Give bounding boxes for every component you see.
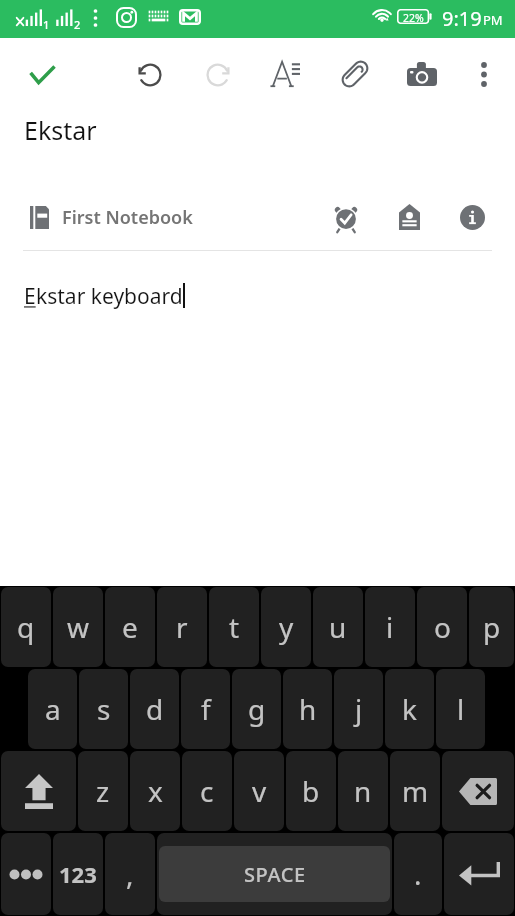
button[interactable]: g [232, 669, 281, 749]
button[interactable]: n [338, 751, 388, 831]
button[interactable]: Note info [450, 195, 494, 239]
staticText: Ekstar [24, 113, 97, 147]
staticText: E [24, 282, 36, 311]
staticText: x [148, 772, 163, 810]
staticText: 22% [403, 11, 424, 25]
staticText: SPACE [244, 861, 306, 888]
staticText: 2 [74, 17, 81, 32]
staticText: PM [483, 11, 503, 29]
staticText: s [97, 690, 111, 728]
staticText: b [302, 772, 320, 810]
button[interactable]: Reminder [324, 195, 368, 239]
staticText: h [299, 690, 317, 728]
button[interactable]: v [234, 751, 284, 831]
staticText: t [229, 608, 240, 646]
button[interactable]: j [334, 669, 383, 749]
button[interactable]: f [181, 669, 230, 749]
staticText: w [67, 608, 90, 646]
staticText: j [355, 690, 363, 728]
button[interactable]: q [1, 587, 51, 667]
button[interactable]: Formatting [263, 51, 309, 97]
staticText: y [279, 608, 294, 646]
button[interactable]: Save note [19, 51, 65, 97]
staticText: m [402, 772, 429, 810]
button[interactable]: y [261, 587, 311, 667]
button[interactable]: b [286, 751, 336, 831]
staticText: k [402, 690, 417, 728]
button[interactable]: Enter [444, 833, 514, 915]
button[interactable]: a [28, 669, 77, 749]
staticText: o [434, 608, 451, 646]
staticText: z [96, 772, 110, 810]
staticText: r [176, 608, 188, 646]
staticText: i [386, 608, 394, 646]
staticText: v [252, 772, 267, 810]
staticText: g [248, 690, 266, 728]
button[interactable]: x [130, 751, 180, 831]
staticText: First Notebook [62, 205, 193, 230]
button[interactable]: s [79, 669, 128, 749]
button[interactable]: First Notebook [0, 187, 515, 247]
staticText: a [45, 690, 61, 728]
button[interactable]: Attach file [332, 51, 378, 97]
button[interactable]: Undo [127, 51, 173, 97]
button[interactable]: Backspace [442, 751, 514, 831]
staticText: u [329, 608, 347, 646]
button[interactable]: 123 [53, 833, 103, 915]
button[interactable]: Tags [387, 195, 431, 239]
button[interactable]: r [157, 587, 207, 667]
staticText: 123 [59, 859, 97, 889]
button[interactable]: , [105, 833, 155, 915]
button[interactable]: k [385, 669, 434, 749]
button[interactable]: Camera [399, 51, 445, 97]
staticText: 9:19 [442, 5, 482, 32]
button[interactable]: h [283, 669, 332, 749]
button[interactable]: t [209, 587, 259, 667]
staticText: 1 [43, 17, 50, 32]
staticText: p [483, 608, 501, 646]
button[interactable]: SPACE [157, 833, 392, 915]
button[interactable]: o [417, 587, 467, 667]
button[interactable]: u [313, 587, 363, 667]
staticText: , [126, 855, 134, 893]
staticText: e [122, 608, 138, 646]
button[interactable]: l [436, 669, 485, 749]
button[interactable]: w [53, 587, 103, 667]
button[interactable]: z [78, 751, 128, 831]
staticText: . [414, 855, 422, 893]
staticText: q [17, 608, 35, 646]
button[interactable]: Symbols [1, 833, 51, 915]
staticText: d [146, 690, 164, 728]
button[interactable]: d [130, 669, 179, 749]
button[interactable]: Shift [1, 751, 76, 831]
staticText: l [457, 690, 465, 728]
button[interactable]: e [105, 587, 155, 667]
staticText: c [200, 772, 214, 810]
staticText: n [354, 772, 372, 810]
button[interactable]: i [365, 587, 415, 667]
button[interactable]: c [182, 751, 232, 831]
button[interactable]: Redo [195, 51, 241, 97]
staticText: kstar keyboard [36, 282, 183, 311]
button[interactable]: . [394, 833, 442, 915]
staticText: f [201, 690, 211, 728]
button[interactable]: More options [461, 51, 507, 97]
button[interactable]: m [390, 751, 440, 831]
button[interactable]: p [469, 587, 514, 667]
